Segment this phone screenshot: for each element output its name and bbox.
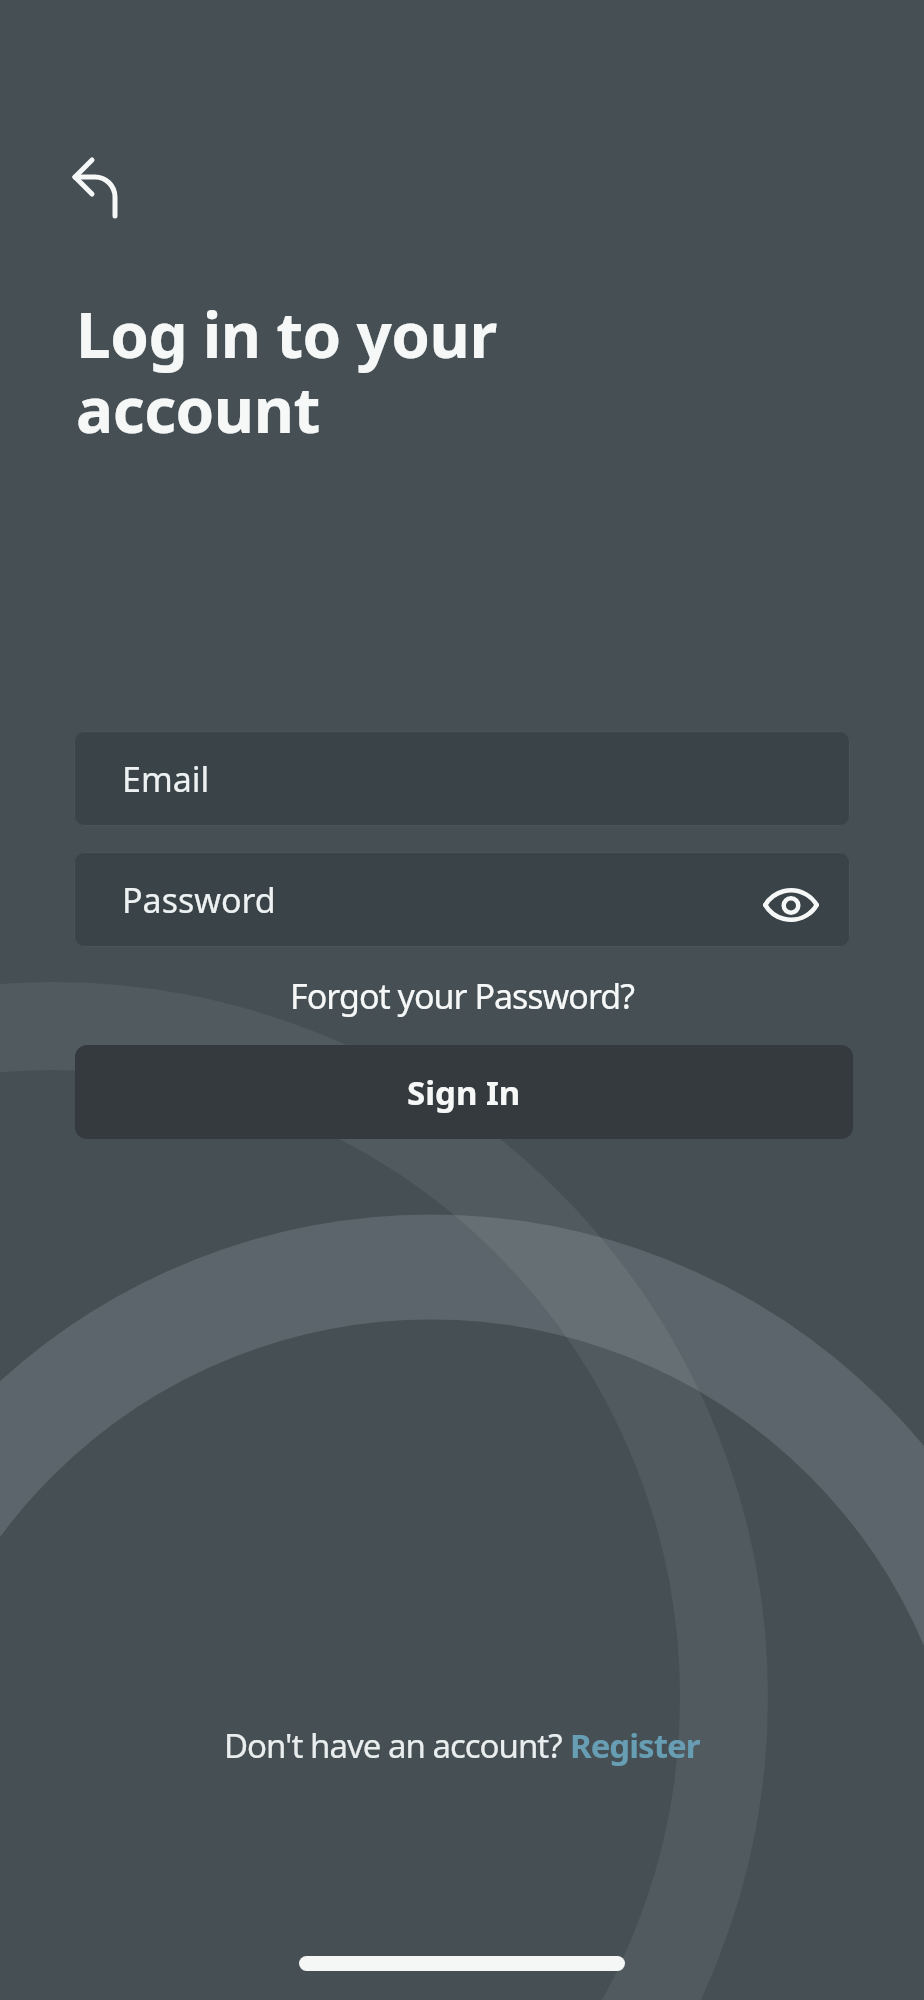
staticText: Log in to your account — [76, 292, 497, 451]
button[interactable] — [751, 865, 831, 945]
staticText: Email — [122, 756, 210, 802]
button[interactable]: Register — [570, 1723, 700, 1768]
button[interactable]: Email — [74, 731, 850, 826]
button[interactable] — [52, 136, 140, 240]
button[interactable]: Forgot your Password? — [0, 973, 924, 1019]
staticText: Password — [122, 877, 276, 923]
staticText: Don't have an account? — [224, 1723, 570, 1768]
staticText: Sign In — [407, 1070, 521, 1115]
button[interactable]: Sign In — [75, 1045, 853, 1139]
button[interactable]: Password — [74, 852, 850, 947]
